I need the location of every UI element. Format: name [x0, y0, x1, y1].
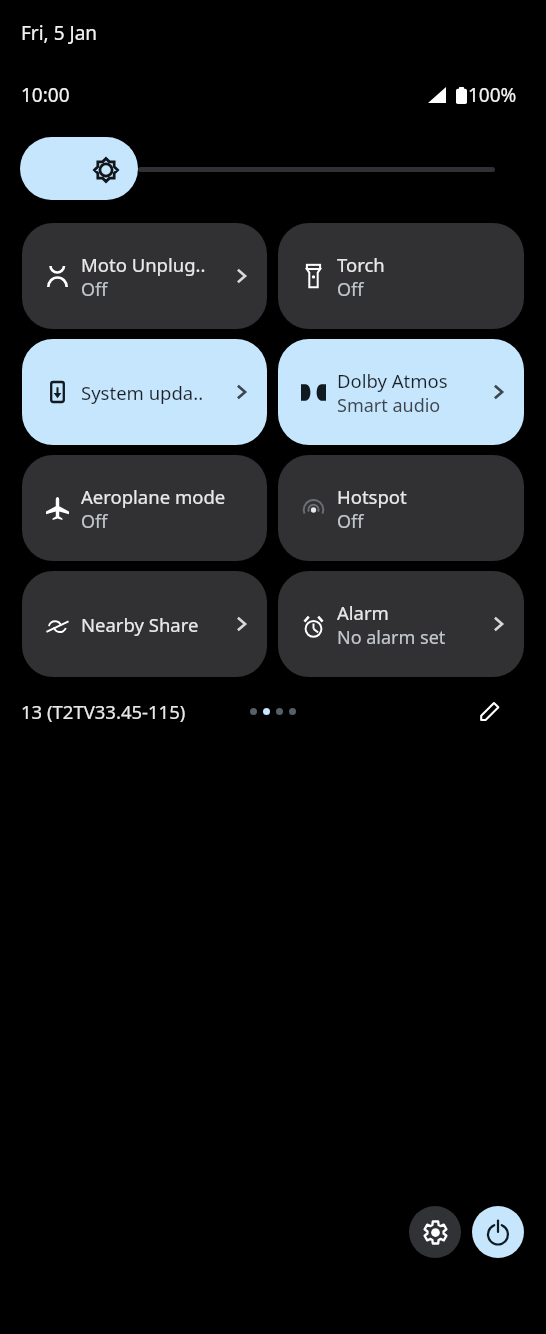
button[interactable]: Aeroplane mode	[22, 455, 267, 561]
staticText: Nearby Share	[81, 612, 199, 637]
button[interactable]: Moto Unplug..	[22, 223, 267, 329]
button[interactable]: Nearby Share	[22, 571, 267, 677]
button[interactable]: Hotspot	[278, 455, 524, 561]
staticText: Hotspot	[337, 484, 407, 509]
button[interactable]: Brightness	[20, 137, 138, 200]
staticText: No alarm set	[337, 625, 446, 650]
button[interactable]: Torch	[278, 223, 524, 329]
staticText: Fri, 5 Jan	[21, 20, 98, 46]
staticText: 10:00	[21, 82, 70, 108]
button[interactable]: Alarm	[278, 571, 524, 677]
staticText: Off	[81, 509, 108, 534]
button[interactable]: Power	[472, 1206, 524, 1258]
staticText: 13 (T2TV33.45-115)	[21, 699, 186, 724]
staticText: 100%	[468, 82, 517, 108]
button[interactable]: System upda..	[22, 339, 267, 445]
staticText: Smart audio	[337, 393, 441, 418]
staticText: Dolby Atmos	[337, 368, 448, 393]
staticText: System upda..	[81, 380, 204, 405]
staticText: Off	[337, 509, 364, 534]
button[interactable]: Edit tiles	[477, 698, 503, 724]
staticText: Alarm	[337, 600, 389, 625]
button[interactable]: Dolby Atmos	[278, 339, 524, 445]
button[interactable]: Settings	[409, 1206, 461, 1258]
staticText: Aeroplane mode	[81, 484, 226, 509]
staticText: Off	[81, 277, 108, 302]
staticText: Off	[337, 277, 364, 302]
staticText: Torch	[337, 252, 385, 277]
staticText: Moto Unplug..	[81, 252, 206, 277]
